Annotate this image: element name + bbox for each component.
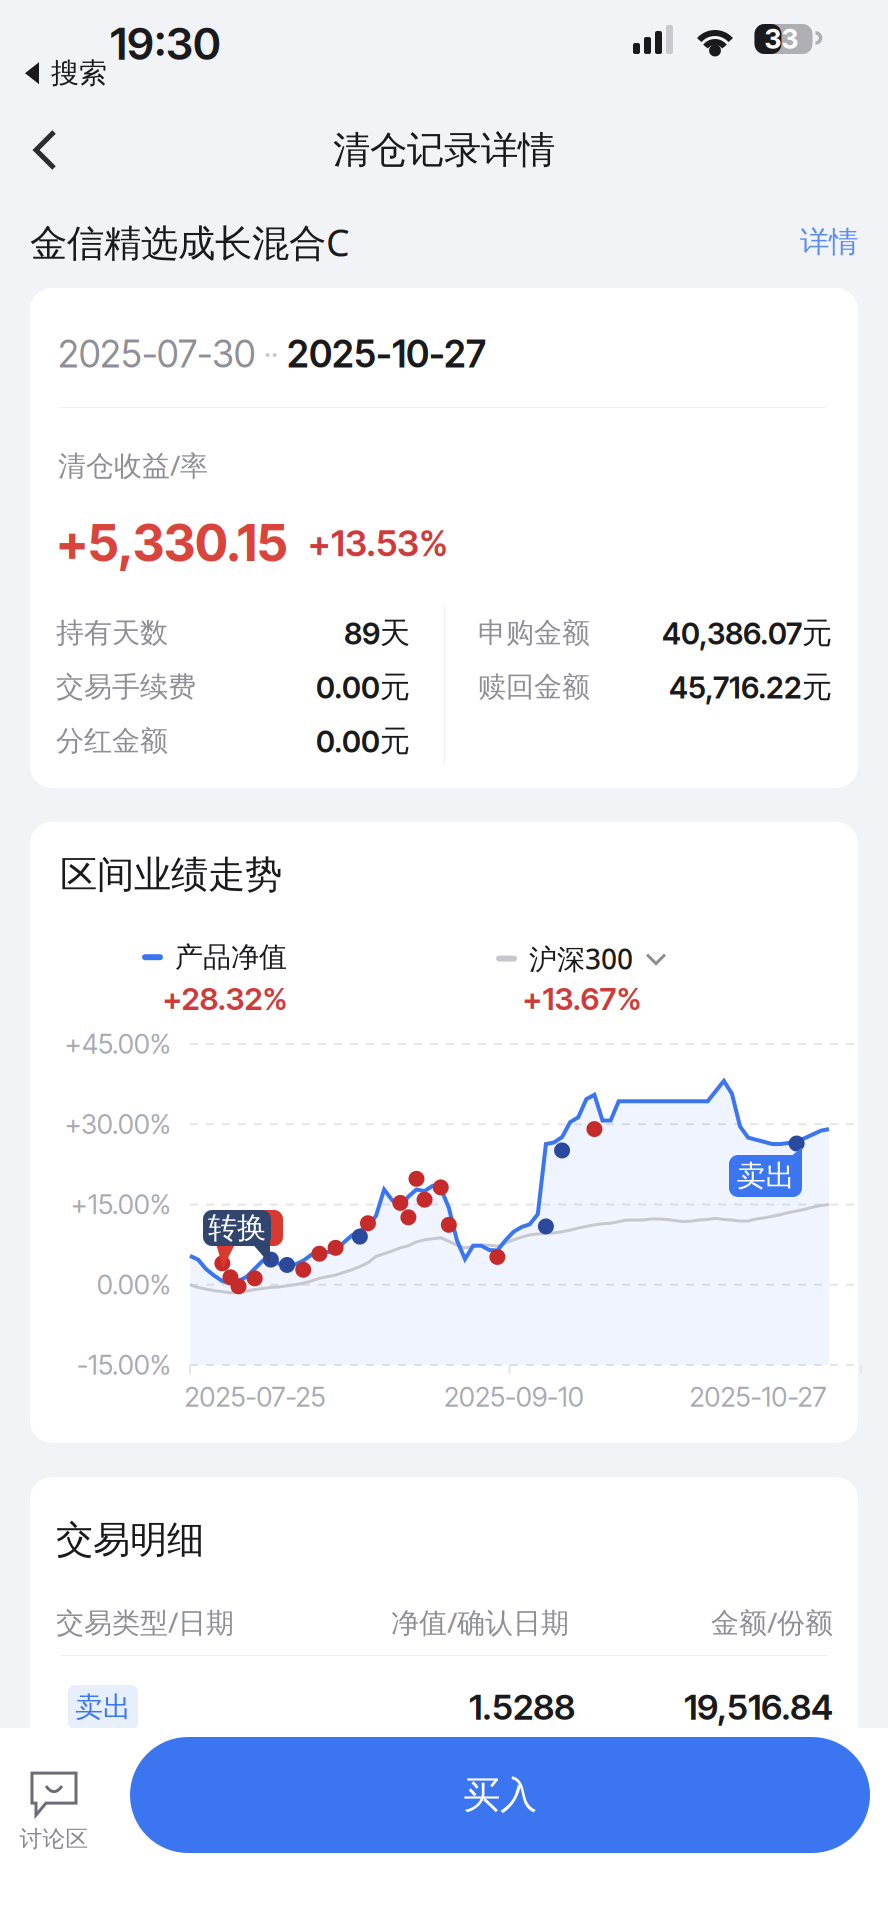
staticText: -15.00% — [77, 1349, 171, 1381]
staticText: 净值/确认日期 — [391, 1603, 569, 1641]
staticText: 1.5288 — [469, 1686, 575, 1728]
staticText: 2025-10-27 — [689, 1381, 826, 1413]
staticText: 分红金额 — [56, 724, 168, 758]
staticText: +13.67% — [522, 980, 641, 1017]
staticText: 搜索 — [51, 56, 107, 90]
staticText: ·· — [264, 336, 278, 372]
staticText: 0.00元 — [316, 722, 410, 760]
staticText: 金额/份额 — [711, 1603, 833, 1641]
staticText: +30.00% — [65, 1108, 171, 1141]
staticText: 买入 — [463, 1772, 537, 1818]
button[interactable]: 讨论区 — [0, 1754, 114, 1870]
staticText: 19,516.84 — [684, 1686, 833, 1728]
button[interactable]: 买入 — [130, 1737, 870, 1853]
staticText: 详情 — [800, 224, 858, 260]
staticText: 讨论区 — [19, 1825, 88, 1853]
staticText: +15.00% — [71, 1188, 171, 1221]
staticText: +45.00% — [65, 1028, 171, 1060]
staticText: 金信精选成长混合C — [30, 217, 350, 267]
staticText: +13.53% — [308, 521, 448, 565]
staticText: 区间业绩走势 — [60, 852, 282, 898]
button[interactable]: 详情 — [780, 214, 858, 270]
staticText: +5,330.15 — [56, 512, 288, 573]
staticText: 沪深300 — [529, 940, 633, 977]
staticText: 产品净值 — [175, 940, 287, 974]
staticText: 89天 — [344, 614, 410, 652]
staticText: 2025-07-25 — [184, 1381, 325, 1413]
staticText: 33 — [764, 23, 798, 55]
staticText: 卖出 — [75, 1690, 131, 1724]
staticText: 45,716.22元 — [669, 668, 832, 706]
staticText: 清仓收益/率 — [58, 446, 208, 484]
button[interactable]: 返回 — [0, 108, 90, 192]
staticText: 40,386.07元 — [662, 614, 832, 652]
staticText: 清仓记录详情 — [333, 127, 555, 173]
staticText: 0.00% — [97, 1268, 171, 1301]
staticText: 赎回金额 — [478, 670, 590, 704]
staticText: 19:30 — [110, 17, 221, 70]
staticText: 转换 — [208, 1210, 266, 1246]
staticText: 交易类型/日期 — [56, 1603, 234, 1641]
staticText: +28.32% — [162, 980, 287, 1017]
staticText: 卖出 — [736, 1158, 794, 1194]
staticText: 交易明细 — [56, 1517, 204, 1563]
staticText: 2025-09-10 — [444, 1381, 584, 1413]
staticText: 0.00元 — [316, 668, 410, 706]
staticText: 2025-10-27 — [287, 332, 486, 376]
staticText: 申购金额 — [478, 616, 590, 650]
staticText: 持有天数 — [56, 616, 168, 650]
staticText: 交易手续费 — [56, 670, 196, 704]
staticText: 2025-07-30 — [58, 332, 255, 376]
